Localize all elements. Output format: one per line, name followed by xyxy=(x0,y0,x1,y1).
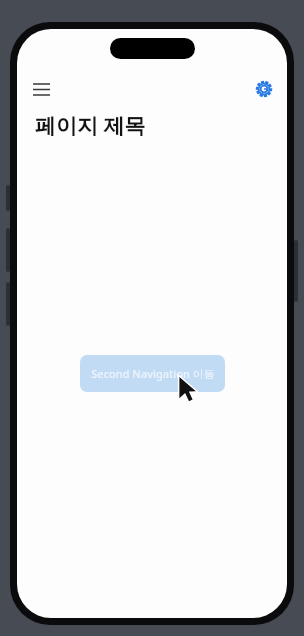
button[interactable]: Settings xyxy=(251,76,277,102)
button[interactable]: Second Navigation 이동 xyxy=(80,355,225,392)
staticText: Second Navigation 이동 xyxy=(91,366,215,381)
button[interactable]: Menu xyxy=(28,76,54,102)
staticText: 페이지 제목 xyxy=(35,111,146,140)
